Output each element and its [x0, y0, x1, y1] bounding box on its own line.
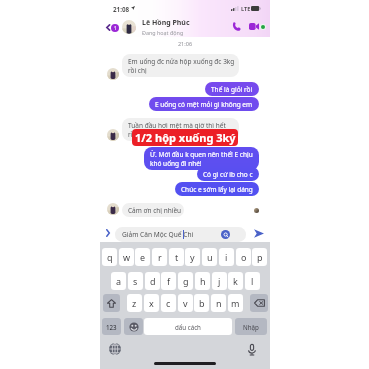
staticText: o [241, 251, 247, 263]
staticText: Giảm Cân Mộc Quế Chi [122, 230, 194, 239]
button[interactable]: b [194, 294, 209, 312]
button[interactable]: x [144, 294, 159, 312]
staticText: q [107, 251, 113, 263]
button[interactable]: y [185, 248, 200, 266]
staticText: s [133, 275, 138, 287]
button[interactable]: d [145, 272, 160, 290]
staticText: t [175, 251, 179, 263]
button[interactable]: p [252, 248, 267, 266]
staticText: Chúc e sớm lấy lại dáng [181, 185, 253, 194]
button[interactable]: q [102, 248, 117, 266]
button[interactable]: Lê Hồng Phúc [142, 18, 190, 36]
staticText: Cảm ơn chị nhiều [128, 206, 182, 215]
staticText: Ừ. Mới đầu k quen nên thế! E chịu [150, 150, 253, 159]
staticText: e [140, 251, 146, 263]
staticText: Em uống đc nửa hộp xuống đc 3kg [128, 57, 235, 66]
button[interactable]: f [161, 272, 176, 290]
button[interactable]: o [236, 248, 251, 266]
button[interactable]: g [178, 272, 193, 290]
button[interactable]: c [161, 294, 176, 312]
button[interactable]: v [178, 294, 193, 312]
staticText: Nhập [243, 323, 259, 331]
button[interactable]: Giảm Cân Mộc Quế Chi [115, 227, 246, 242]
button[interactable]: j [212, 272, 227, 290]
staticText: h [200, 275, 206, 287]
button[interactable]: More actions [101, 225, 114, 240]
button[interactable]: Thế là giỏi rồi [205, 82, 259, 96]
staticText: m [231, 297, 240, 309]
button[interactable]: a [111, 272, 126, 290]
button[interactable]: i [219, 248, 234, 266]
staticText: n [216, 297, 222, 309]
staticText: Đang hoạt động [142, 29, 184, 36]
staticText: v [183, 297, 188, 309]
staticText: y [190, 251, 195, 263]
staticText: Thế là giỏi rồi [211, 85, 253, 94]
staticText: u [207, 251, 213, 263]
staticText: z [132, 297, 137, 309]
button[interactable]: w [119, 248, 134, 266]
staticText: 21:06 [100, 40, 270, 47]
button[interactable]: Có gì cứ ib cho c [197, 167, 259, 181]
staticText: c [166, 297, 171, 309]
staticText: j [218, 275, 221, 287]
button[interactable]: h [195, 272, 210, 290]
staticText: p [257, 251, 263, 263]
staticText: 1 [114, 25, 117, 31]
button[interactable]: Voice call [229, 21, 242, 33]
button[interactable]: Shift [103, 294, 120, 312]
button[interactable]: Ừ. Mới đầu k quen nên thế! E chịu [144, 147, 259, 170]
staticText: Tuần đầu hơi mệt mà giờ thì hết [128, 121, 226, 130]
button[interactable]: t [169, 248, 184, 266]
staticText: a [116, 275, 122, 287]
button[interactable]: r [152, 248, 167, 266]
button[interactable]: Chúc e sớm lấy lại dáng [175, 182, 259, 196]
staticText: 123 [106, 323, 117, 331]
staticText: LTE [241, 5, 251, 13]
staticText: i [225, 251, 228, 263]
staticText: x [149, 297, 154, 309]
staticText: w [123, 251, 131, 263]
staticText: Có gì cứ ib cho c [203, 170, 253, 179]
button[interactable]: l [245, 272, 260, 290]
staticText: 1/2 hộp xuống 3ký [135, 130, 236, 145]
staticText: rồi chị [128, 66, 147, 75]
staticText: r [158, 251, 162, 263]
button[interactable]: Em uống đc nửa hộp xuống đc 3kg [122, 54, 239, 77]
button[interactable]: Cảm ơn chị nhiều [122, 203, 184, 217]
button[interactable]: m [228, 294, 243, 312]
staticText: dấu cách [175, 323, 201, 331]
staticText: b [199, 297, 205, 309]
button[interactable]: Tuần đầu hơi mệt mà giờ thì hết [122, 118, 239, 141]
staticText: l [251, 275, 254, 287]
button[interactable]: Backspace [250, 294, 268, 312]
staticText: k [233, 275, 238, 287]
staticText: Lê Hồng Phúc [142, 18, 190, 28]
staticText: 21:08 [113, 5, 130, 14]
button[interactable]: s [128, 272, 143, 290]
button[interactable]: Video call [249, 23, 259, 30]
button[interactable]: Dictation [245, 342, 259, 356]
button[interactable]: u [202, 248, 217, 266]
button[interactable]: n [211, 294, 226, 312]
staticText: f [167, 275, 171, 287]
button[interactable]: Back [102, 19, 122, 35]
staticText: khó uống đi nhé! [150, 159, 202, 168]
button[interactable]: z [127, 294, 142, 312]
staticText: d [150, 275, 156, 287]
staticText: g [183, 275, 189, 287]
button[interactable]: 123 [102, 318, 121, 335]
button[interactable]: dấu cách [144, 318, 232, 335]
button[interactable]: Change keyboard [108, 342, 122, 356]
button[interactable]: Profile photo [122, 20, 136, 34]
button[interactable]: e [135, 248, 150, 266]
button[interactable]: E uống có mệt mỏi gì không em [149, 97, 259, 111]
button[interactable]: Send [250, 225, 267, 241]
button[interactable]: Emoji [124, 318, 143, 335]
button[interactable]: Nhập [235, 318, 267, 335]
staticText: rồi [128, 130, 137, 139]
staticText: E uống có mệt mỏi gì không em [155, 100, 253, 109]
button[interactable]: k [228, 272, 243, 290]
